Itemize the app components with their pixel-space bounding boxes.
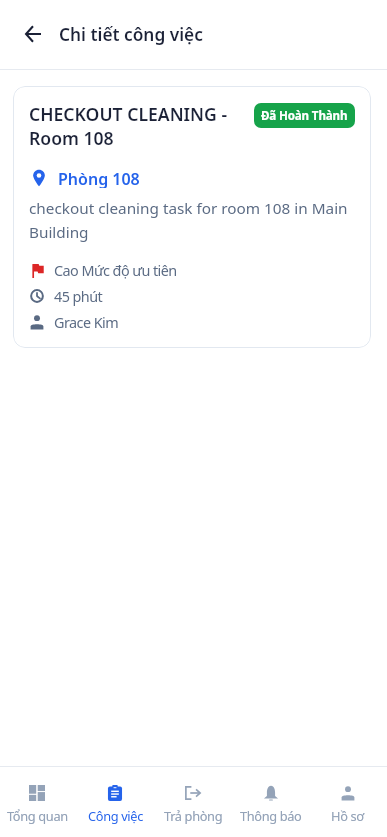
staticText: Grace Kim [54, 312, 119, 332]
staticText: CHECKOUT CLEANING - Room 108 [29, 102, 244, 150]
button[interactable]: Đã Hoàn Thành [254, 103, 355, 128]
button[interactable]: CHECKOUT CLEANING - Room 108 [13, 86, 371, 348]
staticText: Chi tiết công việc [59, 23, 203, 46]
button[interactable]: Tổng quan [0, 767, 76, 837]
staticText: Phòng 108 [58, 168, 140, 188]
staticText: Thông báo [240, 807, 302, 824]
button[interactable]: Thông báo [232, 767, 310, 837]
staticText: Đã Hoàn Thành [261, 109, 348, 123]
staticText: Trả phòng [164, 807, 223, 824]
staticText: Cao Mức độ ưu tiên [54, 260, 177, 280]
staticText: 45 phút [54, 286, 103, 306]
staticText: Hồ sơ [331, 807, 364, 824]
button[interactable]: Công việc [76, 767, 154, 837]
staticText: checkout cleaning task for room 108 in M… [29, 195, 355, 243]
staticText: Công việc [88, 807, 143, 824]
button[interactable]: Back [13, 14, 53, 54]
button[interactable]: Hồ sơ [310, 767, 385, 837]
button[interactable]: Trả phòng [154, 767, 232, 837]
staticText: Tổng quan [7, 807, 68, 824]
